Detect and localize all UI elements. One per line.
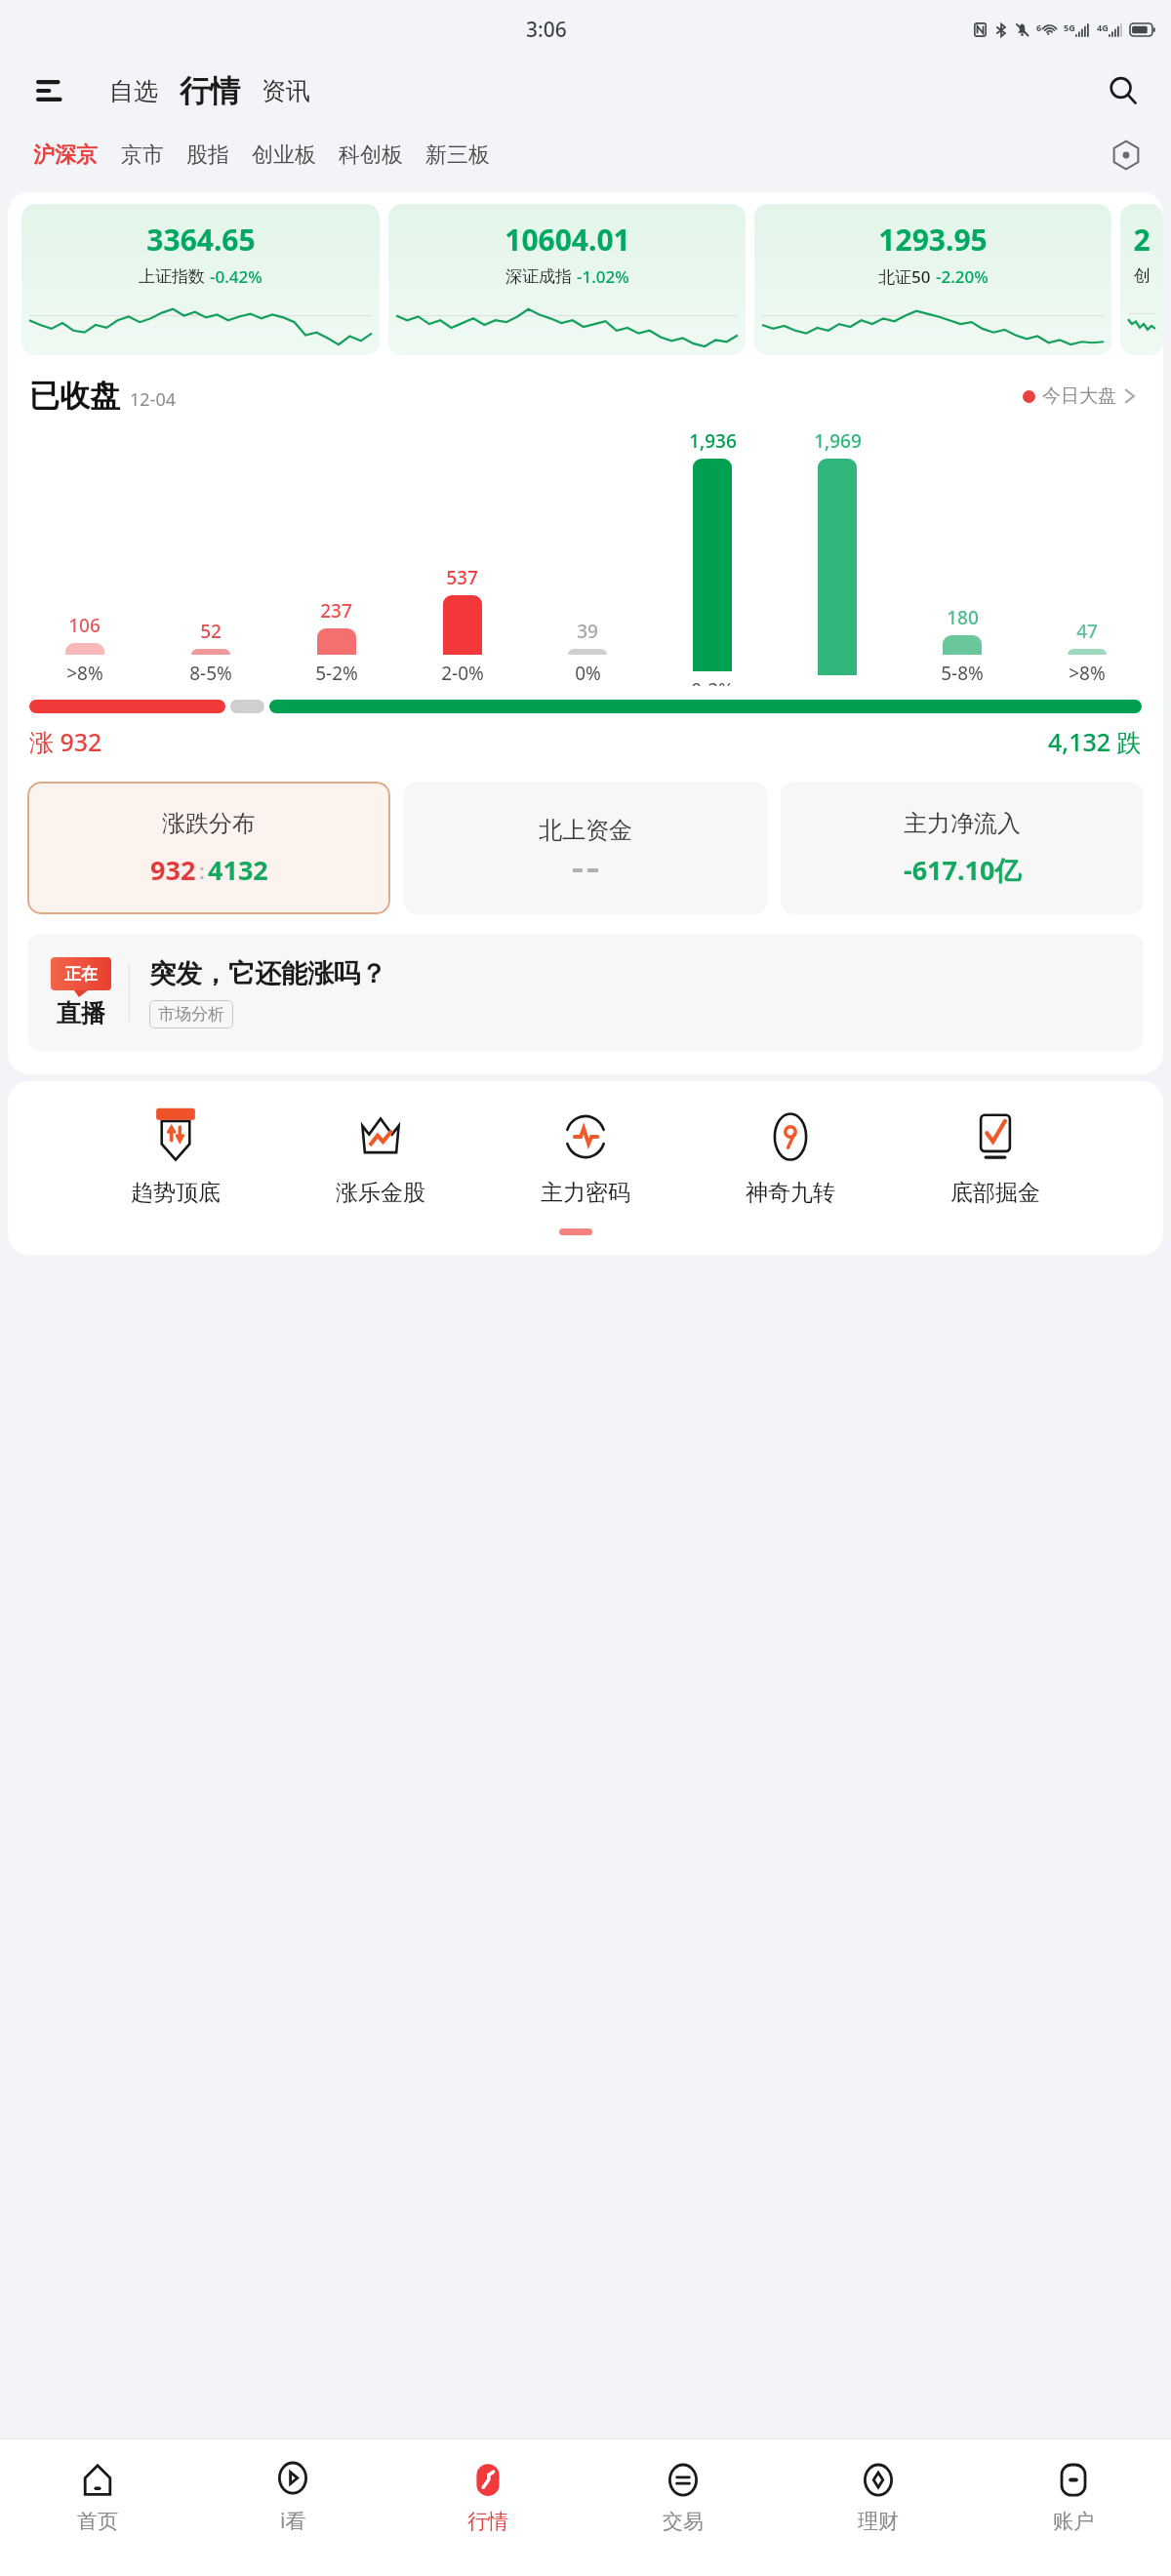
staticText: 5G xyxy=(1064,21,1075,33)
staticText: >8% xyxy=(1069,661,1106,686)
button[interactable]: Search xyxy=(1101,68,1146,113)
staticText: 已收盘 xyxy=(29,377,120,415)
staticText: 2 xyxy=(1133,220,1151,260)
staticText: 账户 xyxy=(1053,2509,1094,2534)
staticText: 3:06 xyxy=(526,16,567,44)
staticText: 主力密码 xyxy=(541,1179,630,1207)
staticText: -617.10亿 xyxy=(904,852,1022,888)
button[interactable]: 1,936 xyxy=(650,428,775,686)
button[interactable]: 神奇九转 xyxy=(742,1107,839,1207)
button[interactable]: 涨乐金股 xyxy=(332,1107,429,1207)
staticText: 市场分析 xyxy=(158,1004,224,1025)
button[interactable]: 52 xyxy=(147,428,273,686)
staticText: i看 xyxy=(280,2507,306,2535)
staticText: 4,132 跌 xyxy=(1048,725,1142,758)
staticText: -0.42% xyxy=(210,265,262,288)
staticText: 6 xyxy=(1036,21,1042,33)
button[interactable]: 趋势顶底 xyxy=(127,1107,224,1207)
staticText: 新三板 xyxy=(425,141,490,169)
staticText: -1.02% xyxy=(577,265,629,288)
button[interactable]: 106 xyxy=(21,428,147,686)
staticText: >8% xyxy=(66,661,103,686)
button[interactable]: 账户 xyxy=(976,2439,1171,2555)
button[interactable]: i看 xyxy=(195,2439,390,2555)
button[interactable]: 正在 xyxy=(27,934,1144,1051)
staticText: 4132 xyxy=(208,852,268,888)
button[interactable]: 今日大盘 xyxy=(1017,379,1142,414)
staticText: 神奇九转 xyxy=(746,1179,835,1207)
staticText: 沪深京 xyxy=(33,141,98,169)
staticText: 1,936 xyxy=(689,428,737,454)
staticText: 京市 xyxy=(121,141,164,169)
button[interactable]: 交易 xyxy=(585,2439,781,2555)
staticText: 237 xyxy=(320,598,352,624)
button[interactable]: 理财 xyxy=(781,2439,976,2555)
button[interactable]: 涨跌分布 xyxy=(27,782,390,914)
button[interactable]: 180 xyxy=(900,428,1025,686)
button[interactable]: 39 xyxy=(525,428,650,686)
staticText: -2.20% xyxy=(936,265,989,288)
button[interactable]: 3364.65 xyxy=(21,204,380,355)
staticText: 1,969 xyxy=(814,428,862,454)
staticText: 180 xyxy=(947,605,979,630)
staticText: 5-2% xyxy=(315,661,358,686)
button[interactable]: 首页 xyxy=(0,2439,195,2555)
staticText: 52 xyxy=(200,619,222,644)
staticText: 理财 xyxy=(858,2509,899,2534)
button[interactable]: Menu xyxy=(29,70,70,111)
button[interactable]: 主力密码 xyxy=(537,1107,634,1207)
button[interactable]: 资讯 xyxy=(255,70,317,112)
staticText: 正在 xyxy=(64,964,98,985)
button[interactable]: 1293.95 xyxy=(754,204,1111,355)
button[interactable]: Tab settings xyxy=(1105,134,1148,177)
staticText: 股指 xyxy=(186,141,229,169)
button[interactable]: 行情 xyxy=(390,2439,585,2555)
staticText: 12-04 xyxy=(130,387,176,412)
staticText: 行情 xyxy=(467,2509,508,2534)
staticText: 涨 932 xyxy=(29,725,102,758)
staticText: 上证指数 xyxy=(139,266,205,287)
button[interactable]: 创业板 xyxy=(247,136,321,175)
button[interactable]: 2 xyxy=(1120,204,1163,355)
button[interactable]: 新三板 xyxy=(421,136,495,175)
button[interactable]: 10604.01 xyxy=(388,204,746,355)
staticText: 106 xyxy=(68,613,101,638)
staticText: 5-8% xyxy=(941,661,984,686)
staticText: 自选 xyxy=(109,76,158,106)
button[interactable]: 北上资金 xyxy=(404,782,767,914)
staticText: 北上资金 xyxy=(539,816,632,845)
button[interactable]: 股指 xyxy=(182,136,234,175)
button[interactable]: 沪深京 xyxy=(27,136,103,175)
staticText: 科创板 xyxy=(339,141,403,169)
button[interactable]: 537 xyxy=(399,428,525,686)
staticText: 今日大盘 xyxy=(1042,384,1116,408)
button[interactable]: 47 xyxy=(1025,428,1150,686)
button[interactable]: 1,969 xyxy=(775,428,900,686)
staticText: 0% xyxy=(575,661,601,686)
button[interactable]: 底部掘金 xyxy=(947,1107,1044,1207)
button[interactable]: 行情 xyxy=(173,70,247,112)
staticText: : xyxy=(199,856,205,885)
staticText: 10604.01 xyxy=(505,220,630,260)
staticText: 涨跌分布 xyxy=(162,809,256,838)
staticText: 涨乐金股 xyxy=(336,1179,425,1207)
staticText: 创 xyxy=(1134,265,1151,286)
staticText: 主力净流入 xyxy=(904,809,1021,838)
staticText: 0-2% xyxy=(691,677,734,686)
staticText: 39 xyxy=(577,619,598,644)
button[interactable]: 主力净流入 xyxy=(781,782,1144,914)
button[interactable]: 京市 xyxy=(116,136,169,175)
staticText: 8-5% xyxy=(189,661,232,686)
staticText: 底部掘金 xyxy=(950,1179,1040,1207)
staticText: 1293.95 xyxy=(878,220,988,260)
staticText: 直播 xyxy=(57,998,105,1028)
staticText: 537 xyxy=(446,565,478,590)
staticText: 3364.65 xyxy=(146,220,256,260)
staticText: 交易 xyxy=(663,2509,704,2534)
staticText: 北证50 xyxy=(878,265,931,288)
button[interactable]: 科创板 xyxy=(334,136,408,175)
button[interactable]: 237 xyxy=(273,428,399,686)
staticText: 创业板 xyxy=(252,141,316,169)
button[interactable]: 自选 xyxy=(102,70,165,112)
